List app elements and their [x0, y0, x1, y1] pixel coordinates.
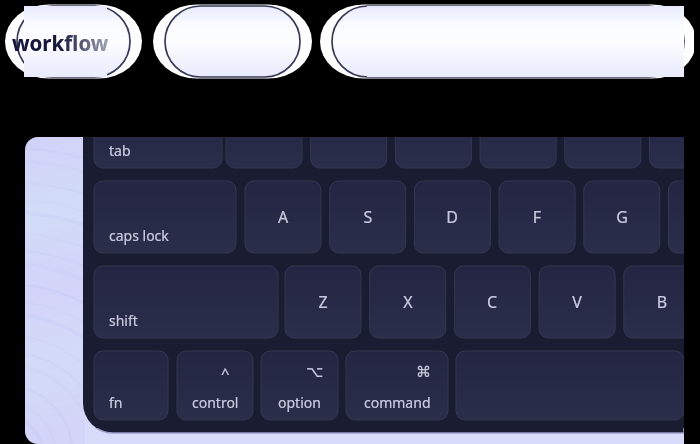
staticText: B — [652, 291, 672, 313]
staticText: ^ — [221, 363, 230, 383]
staticText: X — [398, 291, 418, 313]
staticText: fn — [109, 393, 123, 412]
staticText: C — [482, 291, 502, 313]
staticText: Z — [313, 291, 333, 313]
staticText: option — [278, 393, 321, 412]
staticText: tab — [109, 141, 131, 160]
staticText: S — [358, 206, 378, 228]
staticText: G — [612, 206, 632, 228]
staticText: workflow — [12, 29, 109, 57]
staticText: ⌥ — [306, 363, 324, 380]
staticText: F — [527, 206, 547, 228]
staticText: V — [567, 291, 587, 313]
staticText: shift — [109, 311, 138, 330]
staticText: A — [273, 206, 293, 228]
staticText: caps lock — [109, 226, 169, 245]
staticText: command — [364, 393, 431, 412]
staticText: control — [192, 393, 239, 412]
staticText: D — [442, 206, 462, 228]
staticText: ⌘ — [416, 363, 431, 380]
